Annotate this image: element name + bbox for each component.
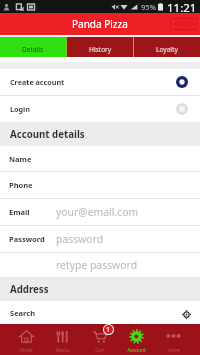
staticText: Menu: [56, 347, 69, 354]
staticText: Panda Pizza: [72, 17, 128, 31]
button[interactable]: 1: [81, 324, 118, 355]
staticText: Login: [10, 104, 176, 114]
staticText: 1: [106, 325, 111, 334]
staticText: your@email.com: [56, 205, 139, 219]
button[interactable]: Loyalty: [134, 37, 200, 57]
button[interactable]: About: [170, 18, 197, 30]
staticText: Loyalty: [156, 45, 178, 54]
staticText: Search: [10, 308, 182, 318]
button[interactable]: Account: [118, 324, 155, 355]
staticText: Account: [127, 347, 146, 354]
staticText: Cart: [95, 347, 105, 354]
button[interactable]: retype password: [0, 253, 200, 277]
button[interactable]: Search: [0, 301, 200, 324]
button[interactable]: Name: [0, 146, 200, 171]
button[interactable]: Phone: [0, 172, 200, 198]
staticText: Phone: [9, 180, 33, 190]
button[interactable]: Create account: [0, 69, 200, 95]
button[interactable]: Details: [0, 37, 66, 57]
button[interactable]: Login: [0, 96, 200, 122]
staticText: Name: [9, 154, 32, 164]
button[interactable]: Password: [0, 226, 200, 252]
staticText: Address: [10, 283, 49, 296]
button[interactable]: more: [155, 324, 192, 355]
staticText: 95%: [141, 2, 156, 12]
staticText: Details: [22, 45, 44, 54]
other: Use my location: [182, 310, 191, 319]
staticText: retype password: [56, 258, 138, 272]
staticText: History: [89, 45, 112, 54]
button[interactable]: Email: [0, 199, 200, 225]
staticText: Email: [9, 207, 30, 217]
staticText: Home: [19, 347, 33, 354]
staticText: Account details: [10, 128, 85, 141]
staticText: Password: [9, 234, 45, 244]
staticText: password: [56, 232, 104, 246]
staticText: Create account: [10, 77, 176, 87]
staticText: more: [168, 347, 180, 354]
button[interactable]: History: [67, 37, 133, 57]
button[interactable]: Home: [8, 324, 44, 355]
staticText: 11:21: [167, 0, 197, 13]
staticText: About: [174, 19, 194, 29]
button[interactable]: Menu: [44, 324, 81, 355]
